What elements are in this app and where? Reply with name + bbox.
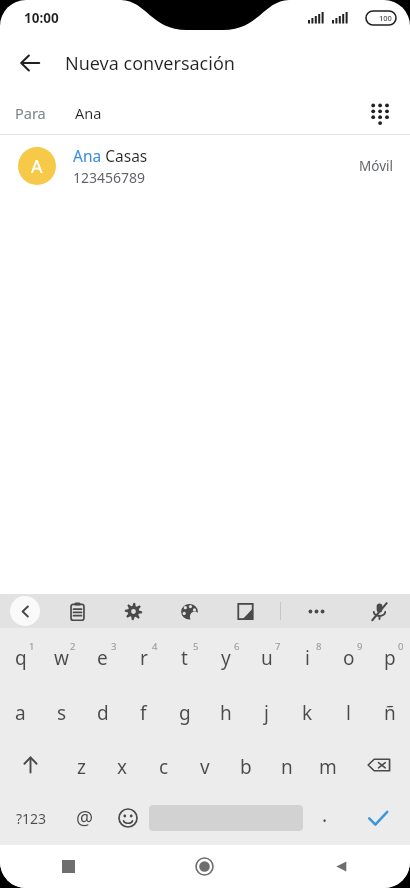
staticText: g: [179, 700, 191, 726]
button[interactable]: A: [0, 135, 410, 197]
button[interactable]: k: [287, 683, 328, 738]
button[interactable]: More options: [293, 594, 339, 628]
button[interactable]: ñ: [369, 683, 410, 738]
staticText: m: [319, 754, 337, 780]
button[interactable]: o: [328, 628, 369, 683]
staticText: e: [97, 645, 108, 671]
staticText: 5: [193, 640, 199, 653]
staticText: c: [159, 754, 169, 780]
staticText: A: [31, 154, 43, 179]
button[interactable]: y: [205, 628, 246, 683]
button[interactable]: r: [123, 628, 164, 683]
staticText: Nueva conversación: [65, 51, 235, 76]
staticText: Móvil: [359, 157, 393, 175]
button[interactable]: Voice input off: [356, 594, 402, 628]
staticText: 3: [111, 640, 117, 653]
staticText: 6: [234, 640, 240, 653]
staticText: @: [76, 805, 94, 831]
button[interactable]: h: [205, 683, 246, 738]
button[interactable]: Home: [136, 845, 273, 888]
staticText: x: [117, 754, 128, 780]
staticText: 2: [70, 640, 76, 653]
button[interactable]: Resize keyboard: [222, 594, 268, 628]
button[interactable]: Back: [273, 845, 410, 888]
button[interactable]: Dialpad: [360, 93, 400, 133]
button[interactable]: c: [143, 738, 184, 791]
staticText: 100: [379, 13, 392, 23]
staticText: 8: [316, 640, 322, 653]
button[interactable]: Emoji: [106, 791, 149, 845]
staticText: 123456789: [73, 168, 146, 187]
button[interactable]: Recent apps: [0, 845, 136, 888]
button[interactable]: q: [0, 628, 41, 683]
button[interactable]: w: [41, 628, 82, 683]
button[interactable]: b: [225, 738, 266, 791]
staticText: Para: [15, 103, 46, 123]
staticText: ?123: [16, 809, 47, 828]
staticText: .: [322, 802, 328, 828]
button[interactable]: Backspace: [348, 738, 410, 791]
button[interactable]: m: [307, 738, 348, 791]
staticText: a: [15, 700, 26, 726]
button[interactable]: g: [164, 683, 205, 738]
staticText: r: [140, 645, 148, 671]
button[interactable]: x: [102, 738, 143, 791]
staticText: f: [140, 700, 147, 726]
staticText: h: [220, 700, 232, 726]
button[interactable]: j: [246, 683, 287, 738]
staticText: b: [240, 754, 252, 780]
staticText: j: [264, 700, 269, 726]
button[interactable]: n: [266, 738, 307, 791]
button[interactable]: u: [246, 628, 287, 683]
staticText: t: [181, 645, 188, 671]
button[interactable]: At sign: [63, 791, 106, 845]
staticText: Ana: [75, 103, 102, 123]
button[interactable]: v: [184, 738, 225, 791]
staticText: l: [346, 700, 351, 726]
staticText: w: [54, 645, 69, 671]
staticText: d: [97, 700, 109, 726]
staticText: u: [261, 645, 273, 671]
staticText: 7: [275, 640, 281, 653]
staticText: q: [15, 645, 27, 671]
button[interactable]: Shift: [0, 738, 61, 791]
staticText: 10:00: [24, 9, 59, 27]
staticText: k: [302, 700, 313, 726]
staticText: y: [221, 645, 231, 671]
button[interactable]: i: [287, 628, 328, 683]
button[interactable]: d: [82, 683, 123, 738]
staticText: 4: [152, 640, 158, 653]
button[interactable]: Theme: [166, 594, 212, 628]
staticText: o: [343, 645, 355, 671]
button[interactable]: Clipboard: [54, 594, 100, 628]
button[interactable]: ?123: [0, 791, 63, 845]
staticText: s: [57, 700, 67, 726]
button[interactable]: Back: [8, 41, 52, 85]
staticText: n: [281, 754, 293, 780]
staticText: Ana Casas: [73, 145, 148, 166]
button[interactable]: f: [123, 683, 164, 738]
button[interactable]: Settings: [110, 594, 156, 628]
button[interactable]: z: [61, 738, 102, 791]
staticText: i: [305, 645, 310, 671]
button[interactable]: p: [369, 628, 410, 683]
button[interactable]: Period: [303, 791, 346, 845]
button[interactable]: Collapse toolbar: [10, 596, 40, 626]
staticText: z: [77, 754, 86, 780]
staticText: 9: [357, 640, 363, 653]
button[interactable]: e: [82, 628, 123, 683]
button[interactable]: t: [164, 628, 205, 683]
button[interactable]: a: [0, 683, 41, 738]
staticText: v: [200, 754, 210, 780]
staticText: ñ: [384, 700, 396, 726]
button[interactable]: s: [41, 683, 82, 738]
staticText: 1: [29, 640, 35, 653]
staticText: p: [384, 645, 396, 671]
button[interactable]: l: [328, 683, 369, 738]
button[interactable]: Done: [346, 791, 410, 845]
staticText: 0: [398, 640, 404, 653]
button[interactable]: Space: [149, 791, 303, 845]
